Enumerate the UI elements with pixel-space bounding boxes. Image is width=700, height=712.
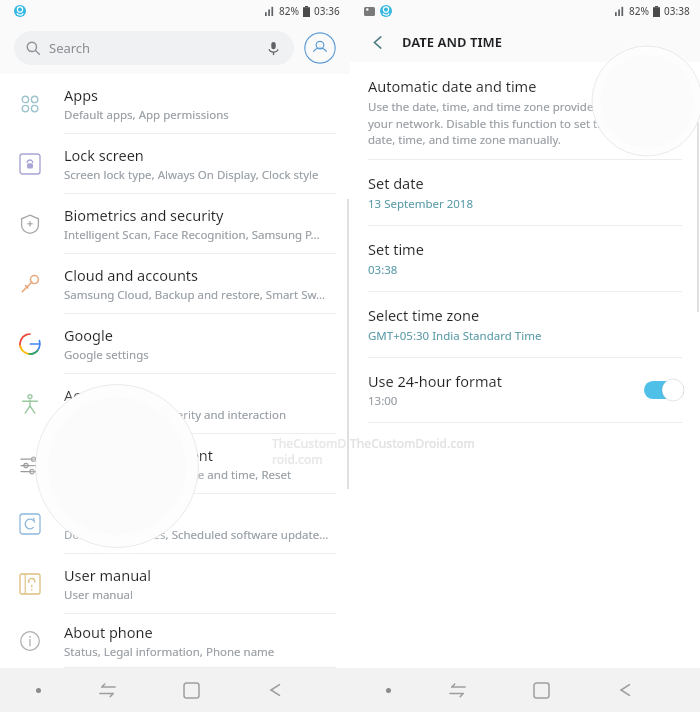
staticText: 13:00 xyxy=(368,393,398,409)
button[interactable]: Search xyxy=(14,31,294,65)
staticText: General management xyxy=(64,445,214,465)
staticText: User manual xyxy=(64,565,151,585)
button[interactable]: Home xyxy=(149,668,233,712)
button[interactable]: Accessibility xyxy=(0,374,350,434)
staticText: Use the date, time, and time zone provid… xyxy=(368,99,617,147)
staticText: Set time xyxy=(368,239,424,259)
staticText: Download updates, Scheduled software upd… xyxy=(64,527,329,543)
staticText: Language and input, Date and time, Reset xyxy=(64,467,292,483)
button[interactable]: Select time zone xyxy=(350,292,700,358)
staticText: 03:38 xyxy=(664,4,690,18)
staticText: GMT+05:30 India Standard Time xyxy=(368,328,542,344)
staticText: Search xyxy=(49,39,91,57)
staticText: Lock screen xyxy=(64,145,144,165)
button[interactable]: Use 24-hour format xyxy=(350,358,700,423)
staticText: Google xyxy=(64,325,113,345)
button[interactable]: Account xyxy=(304,32,336,64)
button[interactable]: Google xyxy=(0,314,350,374)
button[interactable]: General management xyxy=(0,434,350,494)
button[interactable]: Set time xyxy=(350,226,700,292)
staticText: TheCustomDroid.com xyxy=(350,435,475,451)
staticText: Intelligent Scan, Face Recognition, Sams… xyxy=(64,227,320,243)
button[interactable]: Apps xyxy=(0,74,350,134)
staticText: Screen lock type, Always On Display, Clo… xyxy=(64,167,319,183)
button[interactable]: About phone xyxy=(0,614,350,668)
staticText: Samsung Cloud, Backup and restore, Smart… xyxy=(64,287,326,303)
staticText: User manual xyxy=(64,587,133,603)
button[interactable]: Back xyxy=(364,29,390,55)
staticText: Google settings xyxy=(64,347,149,363)
staticText: Select time zone xyxy=(368,305,480,325)
button[interactable]: Set date xyxy=(350,160,700,226)
staticText: Status, Legal information, Phone name xyxy=(64,644,275,660)
staticText: About phone xyxy=(64,622,153,642)
staticText: DATE AND TIME xyxy=(402,33,503,51)
staticText: Vision, Hearing, Dexterity and interacti… xyxy=(64,407,287,423)
staticText: Automatic date and time xyxy=(368,76,537,96)
staticText: 03:36 xyxy=(314,4,340,18)
button[interactable]: User manual xyxy=(0,554,350,614)
staticText: 82% xyxy=(279,4,299,18)
staticText: TheCustomDroid.com xyxy=(272,435,350,467)
staticText: Accessibility xyxy=(64,385,146,405)
button[interactable]: Lock screen xyxy=(0,134,350,194)
button[interactable]: Automatic date and time xyxy=(350,62,700,160)
staticText: Use 24-hour format xyxy=(368,371,502,391)
staticText: Apps xyxy=(64,85,99,105)
staticText: 13 September 2018 xyxy=(368,196,474,212)
button[interactable]: Recents xyxy=(415,668,499,712)
staticText: 03:38 xyxy=(368,262,398,278)
button[interactable]: Home xyxy=(499,668,583,712)
button[interactable]: Back xyxy=(233,668,317,712)
button[interactable]: Biometrics and security xyxy=(0,194,350,254)
staticText: 82% xyxy=(629,4,649,18)
staticText: Set date xyxy=(368,173,424,193)
button[interactable]: Voice search xyxy=(264,39,282,57)
button[interactable]: Toggle on xyxy=(644,379,684,401)
button[interactable]: Back xyxy=(583,668,667,712)
staticText: Biometrics and security xyxy=(64,205,224,225)
button[interactable]: Cloud and accounts xyxy=(0,254,350,314)
button[interactable]: Recents xyxy=(65,668,149,712)
staticText: Cloud and accounts xyxy=(64,265,199,285)
staticText: Default apps, App permissions xyxy=(64,107,229,123)
button[interactable]: Software update xyxy=(0,494,350,554)
